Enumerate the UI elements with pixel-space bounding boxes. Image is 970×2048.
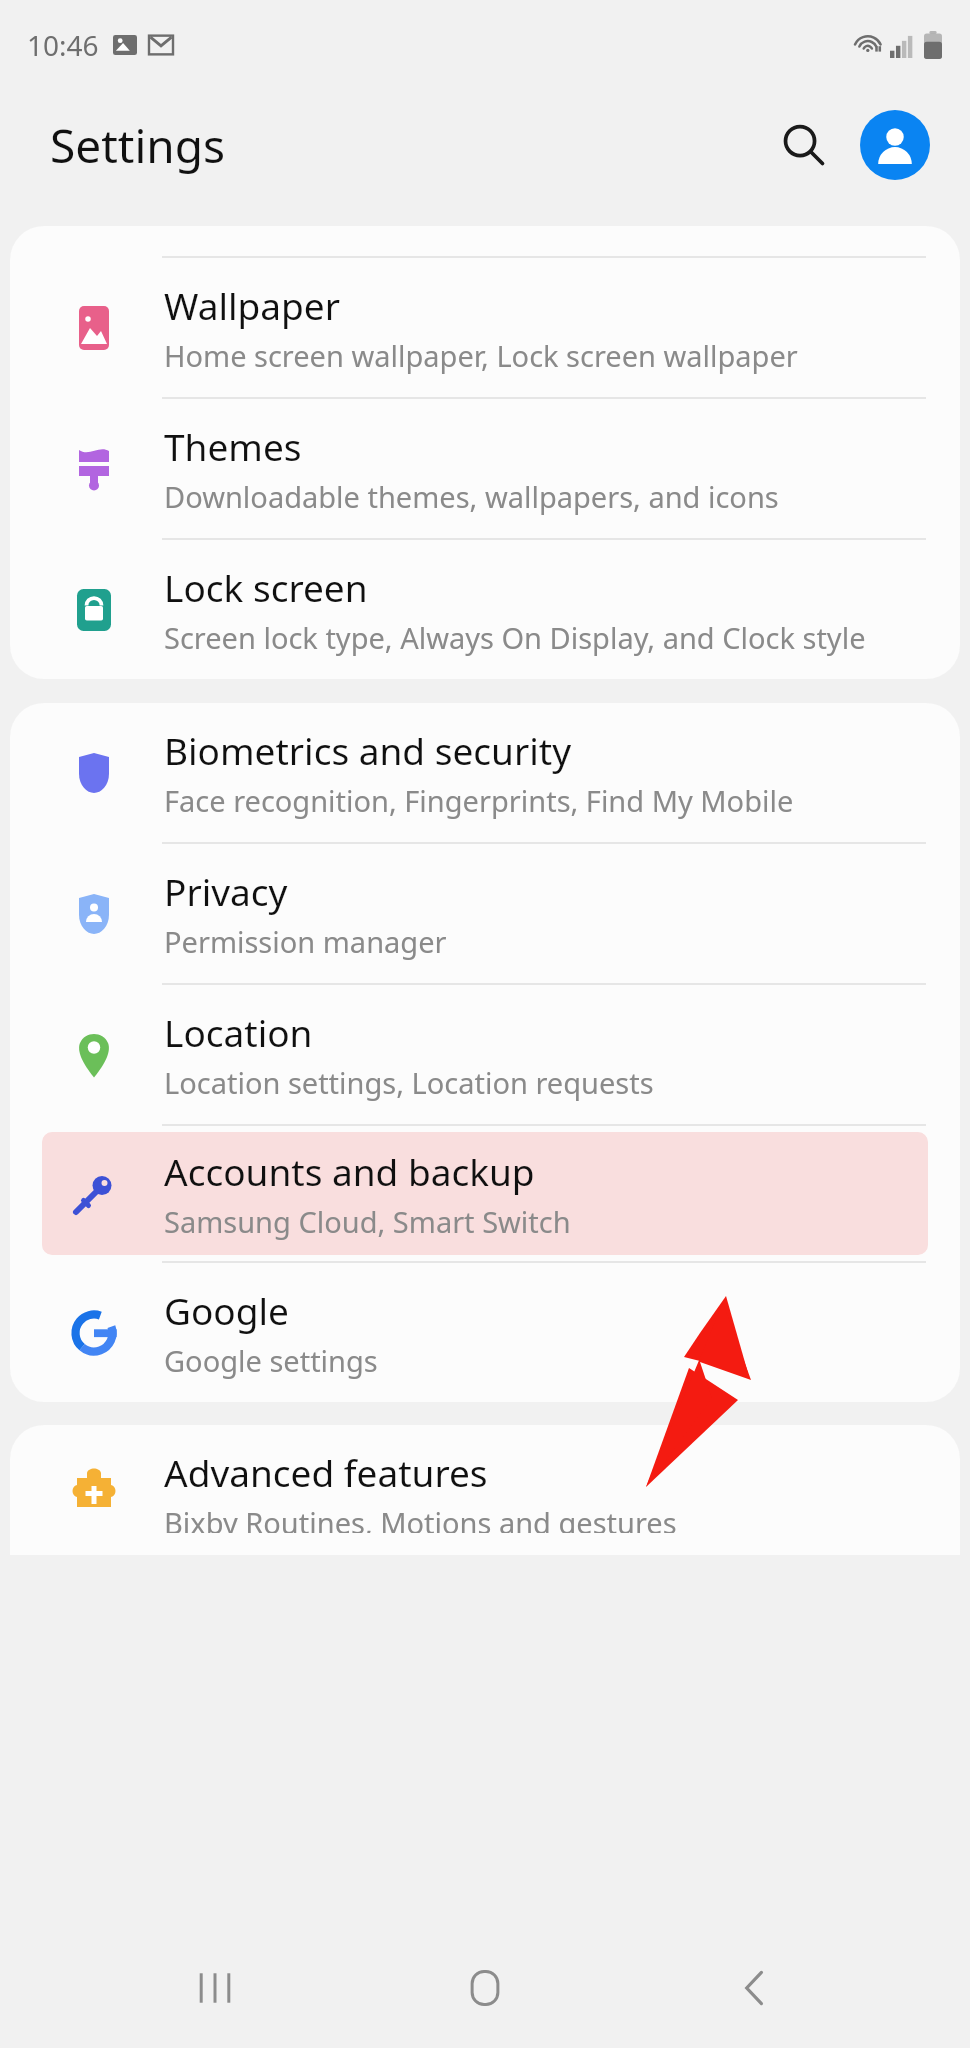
staticText: Permission manager xyxy=(164,922,447,961)
button[interactable]: Themes xyxy=(10,399,960,538)
staticText: Google xyxy=(164,1285,289,1335)
staticText: Settings xyxy=(50,114,226,177)
staticText: Samsung Cloud, Smart Switch xyxy=(164,1202,571,1241)
button[interactable]: Lock screen xyxy=(10,540,960,679)
button[interactable]: Advanced features xyxy=(10,1425,960,1555)
button[interactable]: Biometrics and security xyxy=(10,703,960,842)
button[interactable]: Recents xyxy=(160,1933,270,2043)
staticText: Bixby Routines, Motions and gestures xyxy=(164,1503,677,1533)
staticText: Location xyxy=(164,1007,313,1057)
staticText: Wallpaper xyxy=(164,280,340,330)
staticText: Lock screen xyxy=(164,562,368,612)
staticText: Google settings xyxy=(164,1341,378,1380)
staticText: Advanced features xyxy=(164,1447,488,1497)
button[interactable]: Home xyxy=(430,1933,540,2043)
button[interactable]: Search xyxy=(768,109,840,181)
button[interactable]: Privacy xyxy=(10,844,960,983)
staticText: Location settings, Location requests xyxy=(164,1063,654,1102)
staticText: Face recognition, Fingerprints, Find My … xyxy=(164,781,794,820)
staticText: Privacy xyxy=(164,866,288,916)
button[interactable]: Accounts and backup xyxy=(10,1126,960,1261)
staticText: Home screen wallpaper, Lock screen wallp… xyxy=(164,336,798,375)
button[interactable]: Back xyxy=(700,1933,810,2043)
staticText: 10:46 xyxy=(27,26,99,64)
staticText: Biometrics and security xyxy=(164,725,571,775)
staticText: Themes xyxy=(164,421,302,471)
button[interactable]: Account xyxy=(856,106,934,184)
button[interactable]: Google xyxy=(10,1263,960,1402)
button[interactable]: Wallpaper xyxy=(10,258,960,397)
staticText: Accounts and backup xyxy=(164,1146,535,1196)
button[interactable]: Location xyxy=(10,985,960,1124)
staticText: Screen lock type, Always On Display, and… xyxy=(164,618,866,657)
staticText: Downloadable themes, wallpapers, and ico… xyxy=(164,477,779,516)
